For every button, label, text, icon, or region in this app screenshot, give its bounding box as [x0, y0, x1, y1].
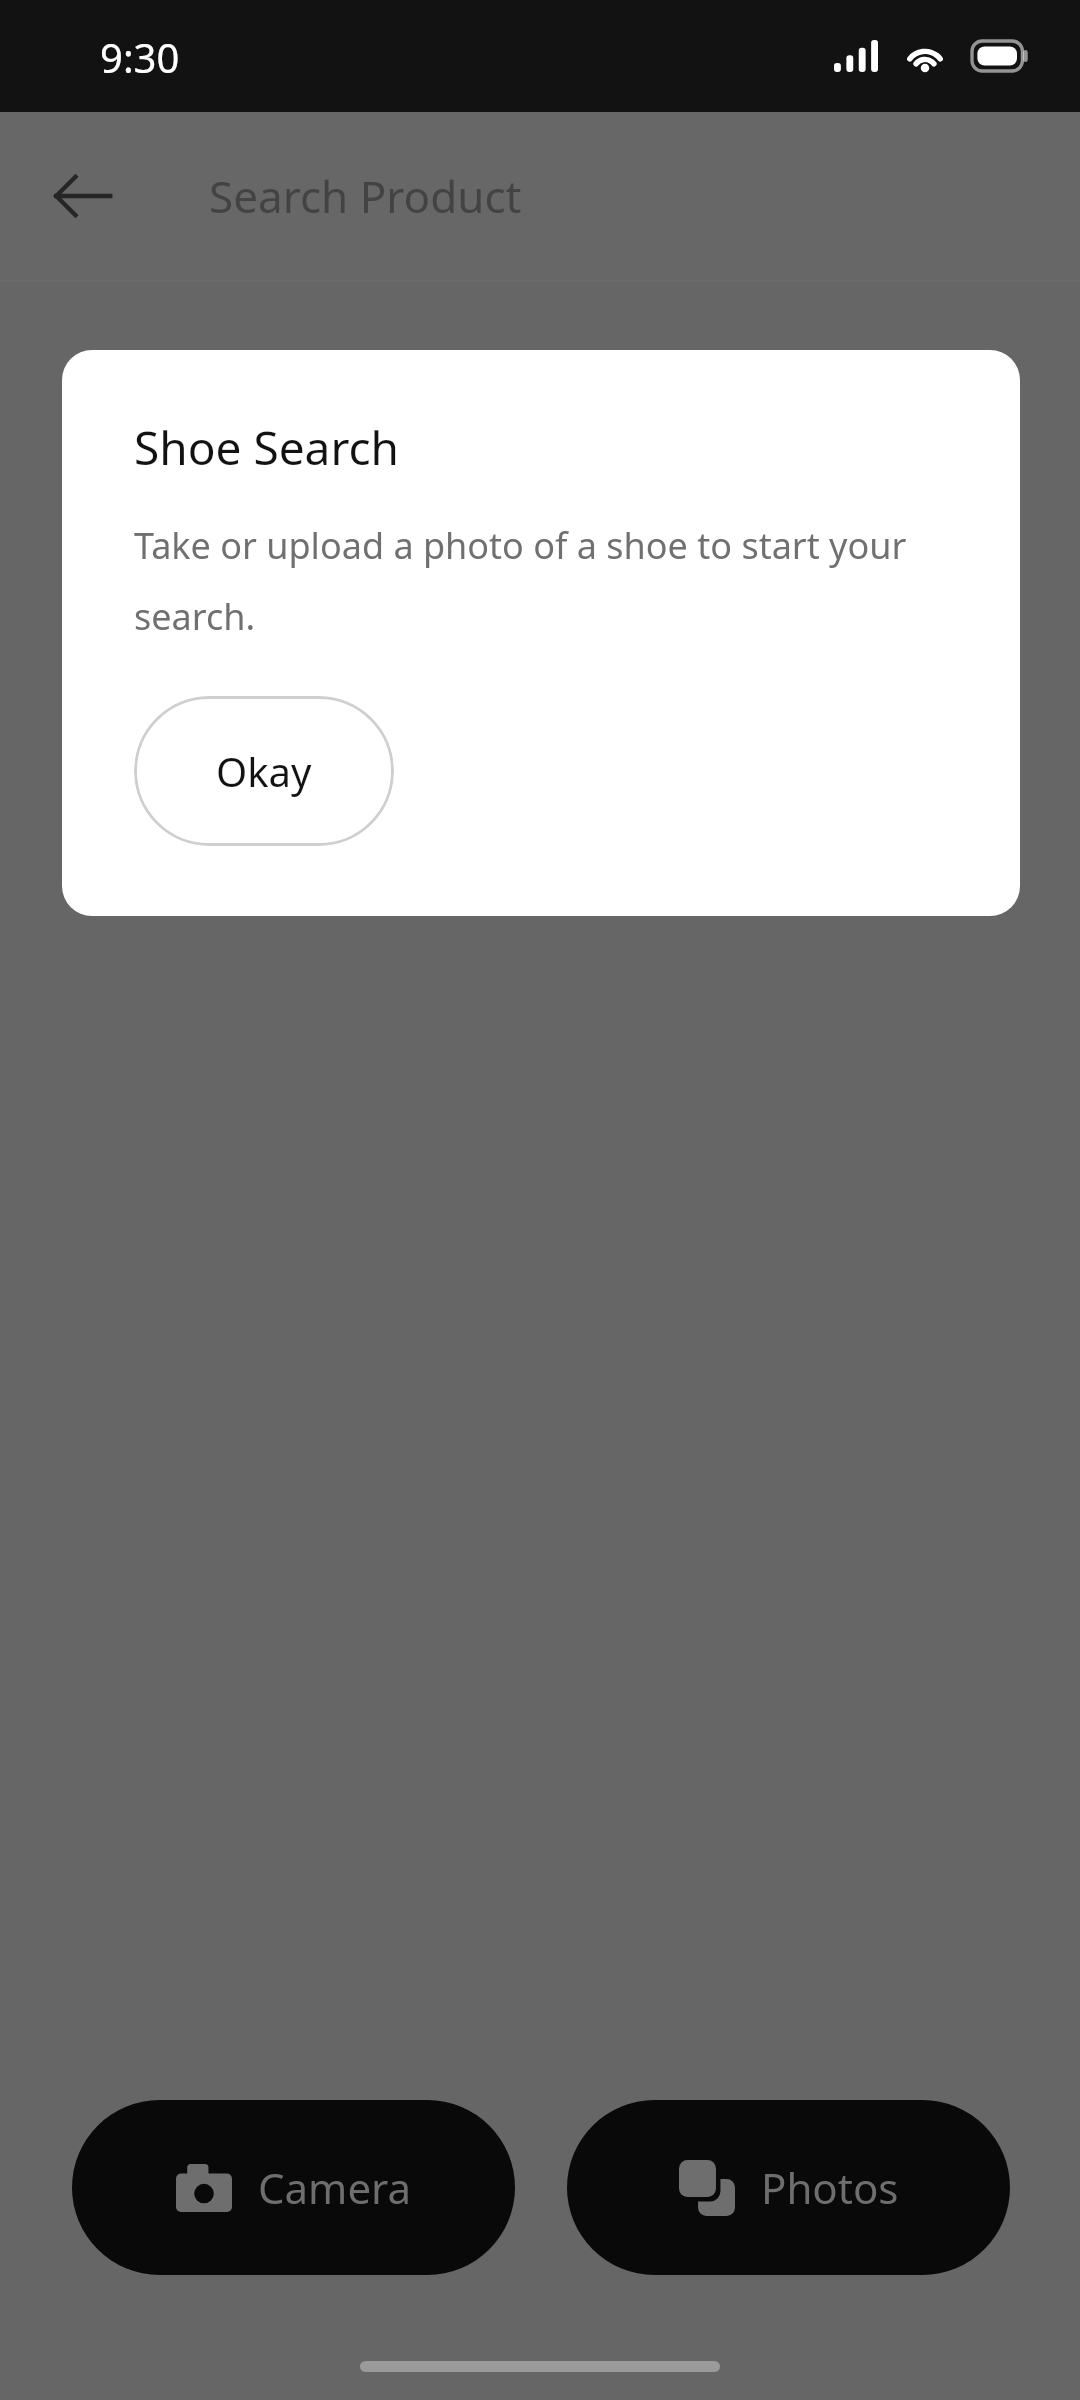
staticText: 9:30 — [100, 30, 180, 84]
staticText: Shoe Search — [134, 416, 400, 479]
button[interactable]: Okay — [134, 696, 394, 846]
staticText: Take or upload a photo of a shoe to star… — [134, 521, 964, 640]
staticText: Okay — [216, 744, 312, 798]
staticText: Search Product — [209, 166, 522, 226]
button[interactable]: Camera — [72, 2100, 515, 2275]
button[interactable]: Back — [30, 143, 136, 249]
staticText: Camera — [258, 2159, 412, 2216]
staticText: Photos — [761, 2159, 899, 2216]
button[interactable]: Photos — [567, 2100, 1010, 2275]
